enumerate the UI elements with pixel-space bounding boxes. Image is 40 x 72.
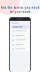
button[interactable]: Service option: [11, 48, 29, 51]
button[interactable]: [11, 25, 29, 28]
button[interactable]: Service option: [11, 39, 29, 42]
staticText: Find the service you need: [0, 6, 39, 9]
button[interactable]: Service option: [11, 34, 29, 38]
button[interactable]: Service option: [11, 43, 29, 47]
button[interactable]: Service option: [11, 30, 29, 33]
staticText: for your book: [9, 10, 30, 14]
